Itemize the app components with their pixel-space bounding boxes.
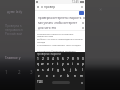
button[interactable]: y	[60, 61, 65, 67]
button[interactable]: x	[43, 73, 50, 79]
button[interactable]: 8	[70, 56, 75, 61]
button[interactable]: проверка интернета скорость	[35, 15, 85, 20]
staticText: 12:45	[72, 0, 79, 4]
staticText: 7	[67, 57, 69, 61]
button[interactable]: k	[73, 67, 79, 73]
staticText: 2	[42, 57, 44, 61]
staticText: d	[47, 68, 49, 72]
button[interactable]: o	[75, 61, 80, 67]
button[interactable]: m	[78, 73, 85, 79]
button[interactable]: n	[71, 73, 78, 79]
button[interactable]: 9	[75, 56, 80, 61]
staticText: провер	[44, 5, 56, 9]
button[interactable]: Back	[36, 5, 40, 9]
button[interactable]: j	[67, 67, 73, 73]
button[interactable]: a	[35, 67, 40, 73]
button[interactable]: q	[35, 61, 40, 67]
button[interactable]: s	[40, 67, 45, 73]
staticText: 0	[82, 57, 84, 61]
staticText: g	[57, 68, 59, 72]
staticText: q	[37, 62, 39, 66]
staticText: j	[70, 68, 71, 72]
staticText: проверка скорости	[37, 52, 61, 56]
staticText: 9	[77, 57, 79, 61]
button[interactable]: 2	[40, 56, 45, 61]
button[interactable]: i	[70, 61, 75, 67]
button[interactable]: p	[80, 61, 85, 67]
staticText: 5	[57, 57, 59, 61]
staticText: r	[52, 62, 54, 66]
staticText: ?123	[37, 80, 43, 84]
staticText: t	[57, 62, 59, 66]
button[interactable]: c	[50, 73, 57, 79]
staticText: 1	[37, 57, 39, 61]
button[interactable]: Search	[80, 81, 83, 84]
staticText: 2	[18, 69, 21, 75]
staticText: p	[82, 62, 84, 66]
button[interactable]: w	[40, 61, 45, 67]
staticText: y	[62, 62, 64, 66]
staticText: b	[67, 74, 69, 78]
button[interactable]: t	[55, 61, 60, 67]
button[interactable]: 4	[50, 56, 55, 61]
staticText: e	[47, 62, 49, 66]
other: Insert	[82, 16, 85, 19]
button[interactable]: u	[65, 61, 70, 67]
staticText: Главное у	[5, 56, 21, 60]
staticText: x	[46, 74, 48, 78]
staticText: 1	[5, 69, 8, 75]
staticText: c	[53, 74, 55, 78]
staticText: w	[41, 62, 44, 66]
button[interactable]: для чего это	[35, 25, 85, 30]
button[interactable]: h	[61, 67, 67, 73]
staticText: 8	[72, 57, 74, 61]
other: Insert	[81, 21, 84, 24]
staticText: 6	[62, 57, 64, 61]
staticText: 4	[52, 57, 54, 61]
staticText: f	[52, 68, 54, 72]
button[interactable]: 7	[65, 56, 70, 61]
staticText: u	[67, 62, 69, 66]
staticText: проверка интернета скорость	[38, 16, 82, 20]
button[interactable]: z	[35, 73, 43, 79]
staticText: Проверка к неправильн Российской	[5, 24, 23, 36]
staticText: a	[37, 68, 39, 72]
button[interactable]: e	[45, 61, 50, 67]
staticText: z	[38, 74, 40, 78]
button[interactable]: Search	[40, 5, 44, 9]
staticText: ✕	[99, 7, 103, 12]
staticText: для чего это	[38, 26, 57, 30]
button[interactable]: g	[55, 67, 61, 73]
staticText: n	[74, 74, 76, 78]
other: Insert	[81, 26, 84, 29]
staticText: дуже lady	[7, 10, 23, 14]
button[interactable]: b	[64, 73, 71, 79]
button[interactable]: 1	[35, 56, 40, 61]
button[interactable]: 3	[45, 56, 50, 61]
staticText: v	[60, 74, 62, 78]
button[interactable]: l	[79, 67, 85, 73]
button[interactable]	[52, 81, 70, 84]
staticText: o	[77, 62, 79, 66]
staticText: k	[75, 68, 77, 72]
button[interactable]: 0	[80, 56, 85, 61]
button[interactable]: Search	[79, 11, 84, 15]
button[interactable]: v	[57, 73, 64, 79]
button[interactable]: 5	[55, 56, 60, 61]
button[interactable]: Clear	[80, 5, 84, 9]
staticText: m	[80, 74, 83, 78]
button[interactable]: как узнать чтобы интернет	[35, 20, 85, 25]
staticText: i	[72, 62, 73, 66]
button[interactable]: f	[50, 67, 55, 73]
button[interactable]: d	[45, 67, 50, 73]
staticText: Сравнение скорости интернета помогает ва…	[37, 32, 83, 47]
staticText: 3	[30, 69, 33, 75]
button[interactable]: r	[50, 61, 55, 67]
staticText: s	[42, 68, 44, 72]
button[interactable]: 6	[60, 56, 65, 61]
staticText: 3	[47, 57, 49, 61]
staticText: h	[63, 68, 65, 72]
staticText: Российской Федерации интернет	[37, 49, 76, 52]
staticText: l	[82, 68, 83, 72]
staticText: как узнать чтобы интернет	[38, 21, 78, 25]
